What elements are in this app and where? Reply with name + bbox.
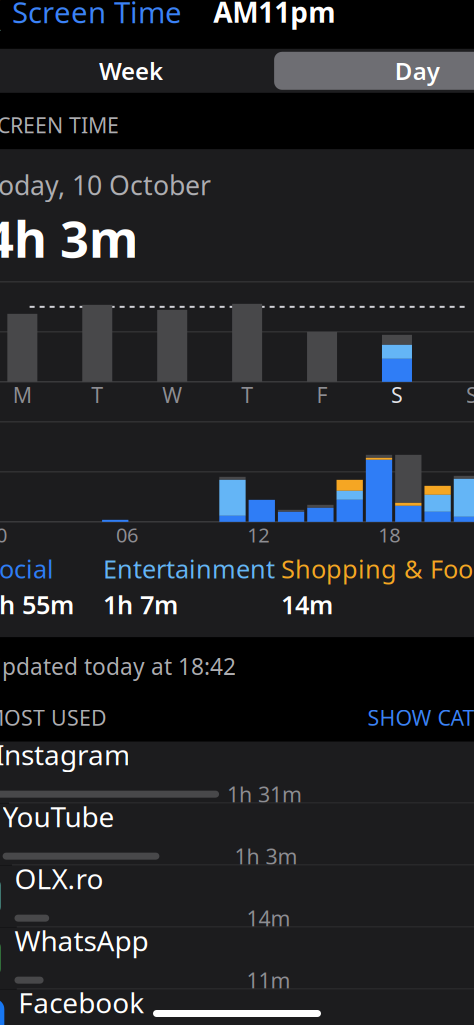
staticText: S [466,381,474,409]
staticText: Facebook [18,984,144,1021]
staticText: S [391,381,403,409]
staticText: T [91,381,103,409]
staticText: 06 [116,522,138,548]
button[interactable]: Day [274,52,474,90]
staticText: Day [395,55,440,87]
staticText: 12 [247,522,269,548]
staticText: 1h 3m [235,842,298,870]
staticText: T [241,381,253,409]
staticText: Updated today at 18:42 [0,651,236,681]
staticText: MOST USED [0,703,107,731]
staticText: 00 [0,522,7,548]
staticText: 14m [281,587,333,621]
staticText: SCREEN TIME [0,111,119,139]
staticText: Shopping & Food [281,552,474,585]
staticText: WhatsApp [14,922,148,959]
button[interactable]: ▶ [0,804,474,866]
staticText: Screen Time [12,0,182,31]
button[interactable]: Week [0,52,274,90]
staticText: 1h 55m [0,587,74,621]
button[interactable]: f [0,990,474,1025]
staticText: SHOW CATEGORIES [367,703,474,731]
button[interactable]: ✆ [0,928,474,990]
button[interactable]: SHOW CATEGORIES [367,703,474,731]
staticText: OLX.ro [14,860,103,897]
staticText: Entertainment [103,552,275,585]
staticText: F [317,381,328,409]
staticText: 18 [378,522,400,548]
staticText: Instagram [0,736,130,773]
staticText: M [13,381,32,409]
staticText: 1h 7m [103,587,178,621]
staticText: 11m [246,966,290,994]
staticText: Today, 10 October [0,167,211,202]
button[interactable]: Instagram [0,742,474,804]
staticText: YouTube [3,798,115,835]
button[interactable]: o|x [0,866,474,928]
staticText: W [162,381,182,409]
staticText: 4h 3m [0,205,138,272]
staticText: Week [99,55,163,87]
staticText: 14m [246,904,290,932]
staticText: 1h 31m [227,780,302,808]
staticText: AM11pm [213,0,335,30]
button[interactable]: ❮ [0,0,182,37]
staticText: Social [0,552,54,585]
